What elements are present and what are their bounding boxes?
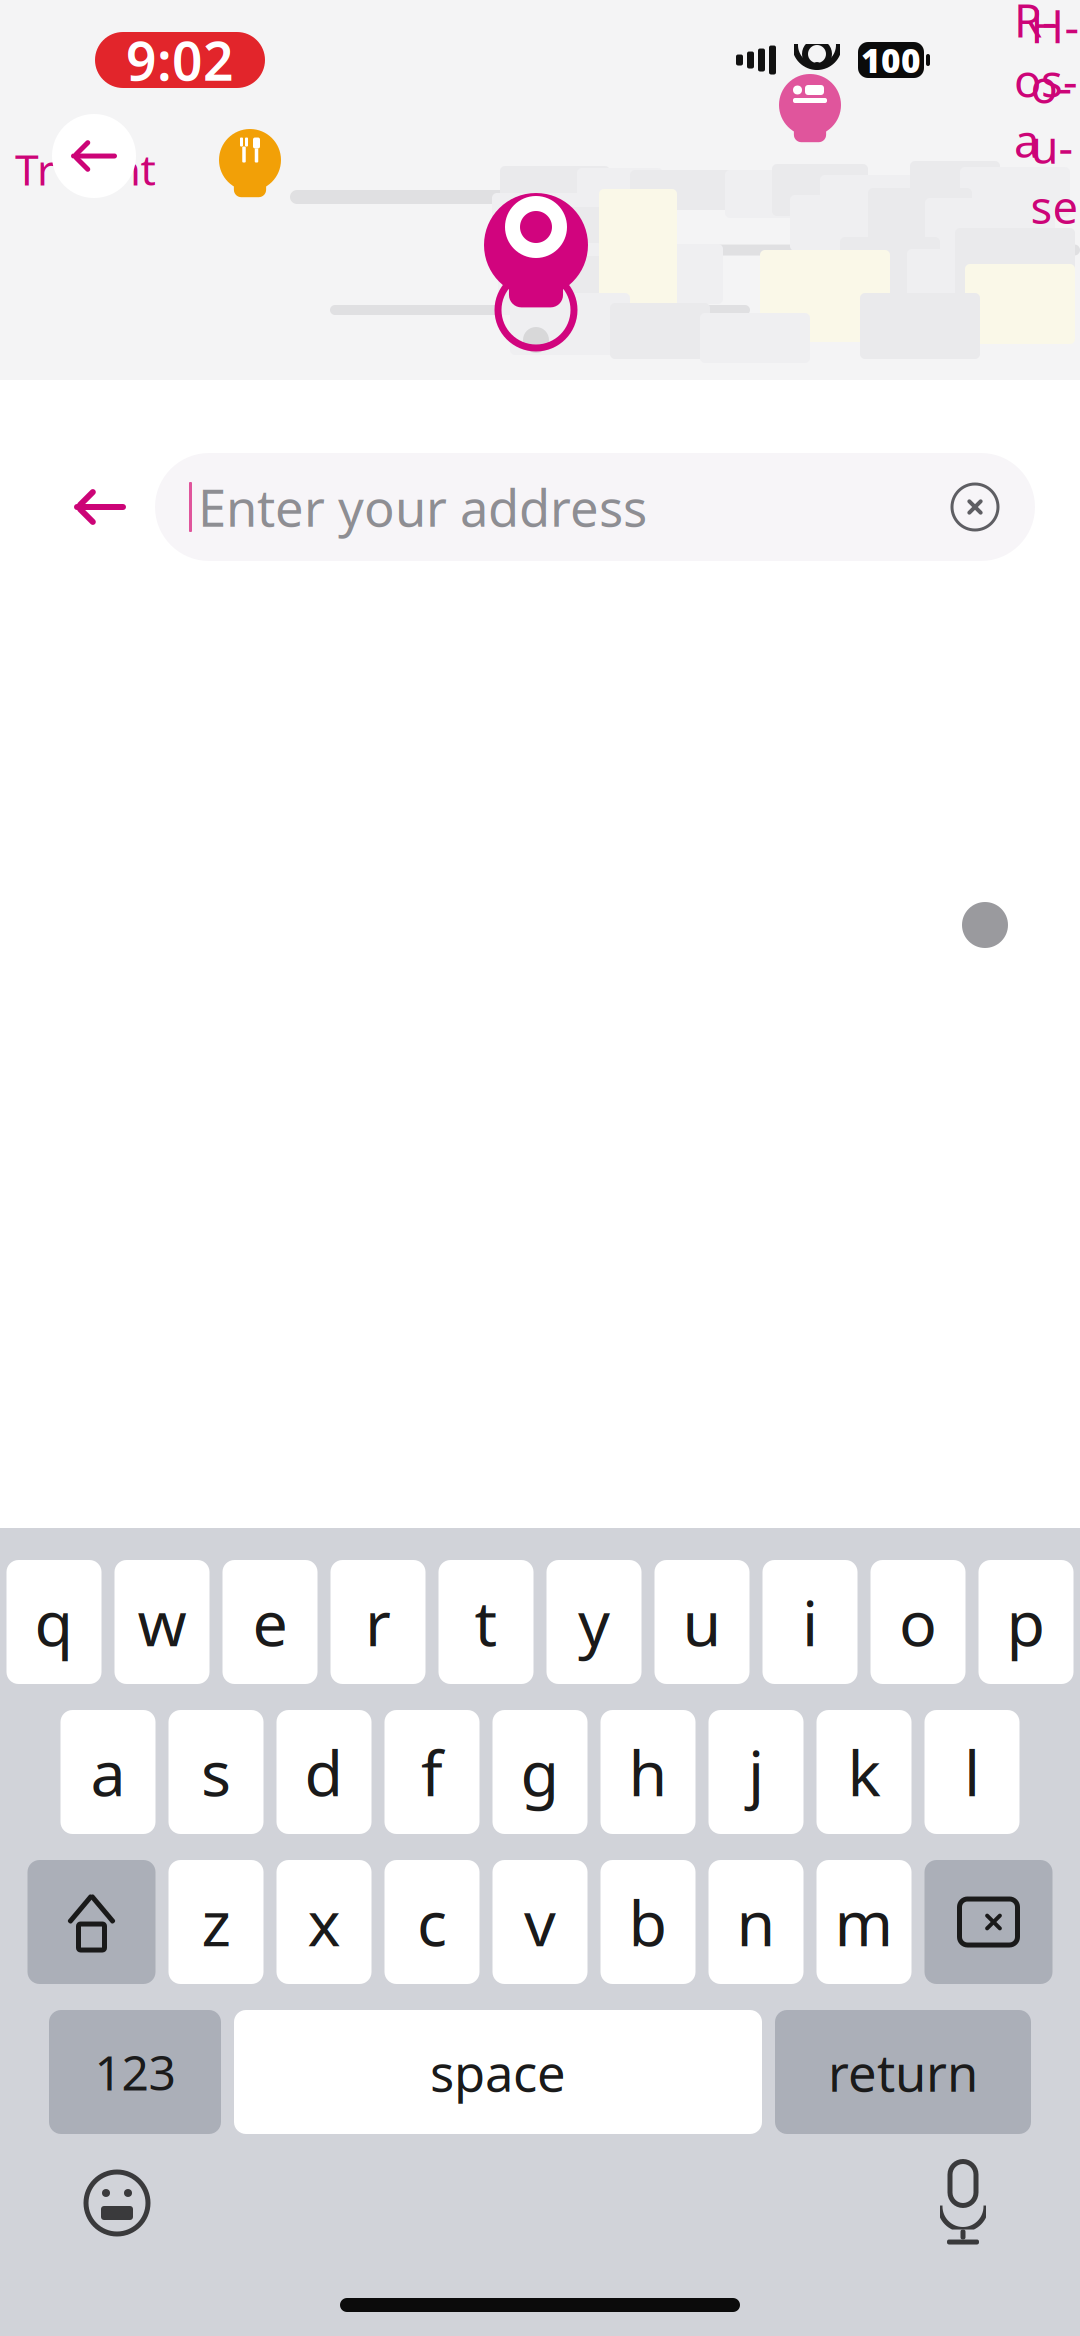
button[interactable]: d xyxy=(276,1710,371,1834)
staticText: Enter your address xyxy=(198,473,647,541)
staticText: c xyxy=(417,1880,447,1964)
staticText: e xyxy=(252,1580,287,1664)
staticText: Rosa xyxy=(1014,0,1078,170)
staticText: d xyxy=(304,1730,343,1814)
button[interactable]: Dictate xyxy=(908,2148,1018,2258)
button[interactable]: Enter your address xyxy=(155,453,1035,561)
button[interactable]: space xyxy=(234,2010,762,2134)
staticText: i xyxy=(802,1580,818,1664)
staticText: p xyxy=(1006,1580,1045,1664)
button[interactable]: x xyxy=(276,1860,371,1984)
button[interactable]: w xyxy=(114,1560,209,1684)
staticText: k xyxy=(847,1730,880,1814)
staticText: h xyxy=(628,1730,667,1814)
staticText: a xyxy=(90,1730,125,1814)
staticText: z xyxy=(201,1880,230,1964)
button[interactable]: c xyxy=(384,1860,479,1984)
staticText: Tr xyxy=(15,141,55,197)
staticText: u xyxy=(682,1580,721,1664)
staticText: 9:02 xyxy=(126,25,234,95)
button[interactable]: k xyxy=(816,1710,911,1834)
button[interactable]: g xyxy=(492,1710,587,1834)
button[interactable]: e xyxy=(222,1560,317,1684)
button[interactable]: l xyxy=(924,1710,1019,1834)
button[interactable]: r xyxy=(330,1560,425,1684)
button[interactable]: Back xyxy=(45,452,155,562)
staticText: House xyxy=(1030,0,1079,236)
button[interactable]: s xyxy=(168,1710,263,1834)
staticText: r xyxy=(365,1580,391,1664)
staticText: f xyxy=(421,1730,443,1814)
button[interactable]: u xyxy=(654,1560,749,1684)
button[interactable]: i xyxy=(762,1560,857,1684)
staticText: n xyxy=(736,1880,775,1964)
staticText: b xyxy=(628,1880,667,1964)
button[interactable]: a xyxy=(60,1710,155,1834)
button[interactable]: p xyxy=(978,1560,1073,1684)
button[interactable]: b xyxy=(600,1860,695,1984)
staticText: 123 xyxy=(94,2040,175,2104)
staticText: o xyxy=(899,1580,937,1664)
staticText: j xyxy=(748,1730,764,1814)
staticText: y xyxy=(578,1580,610,1664)
button[interactable]: 123 xyxy=(49,2010,221,2134)
staticText: space xyxy=(430,2038,566,2106)
staticText: t xyxy=(474,1580,497,1664)
staticText: 100 xyxy=(861,38,921,82)
staticText: q xyxy=(34,1580,73,1664)
button[interactable]: Emoji xyxy=(62,2148,172,2258)
staticText: return xyxy=(828,2038,978,2106)
staticText: m xyxy=(834,1880,893,1964)
staticText: nt xyxy=(114,141,155,197)
button[interactable]: v xyxy=(492,1860,587,1984)
button[interactable]: h xyxy=(600,1710,695,1834)
button[interactable]: f xyxy=(384,1710,479,1834)
button[interactable]: t xyxy=(438,1560,533,1684)
button[interactable]: n xyxy=(708,1860,803,1984)
button[interactable]: m xyxy=(816,1860,911,1984)
button[interactable]: z xyxy=(168,1860,263,1984)
staticText: w xyxy=(137,1580,186,1664)
button[interactable]: Back xyxy=(52,114,136,198)
staticText: g xyxy=(520,1730,559,1814)
button[interactable]: Shift xyxy=(27,1860,155,1984)
button[interactable]: j xyxy=(708,1710,803,1834)
button[interactable]: Delete xyxy=(924,1860,1052,1984)
staticText: l xyxy=(964,1730,980,1814)
staticText: v xyxy=(524,1880,556,1964)
button[interactable]: q xyxy=(6,1560,101,1684)
button[interactable]: y xyxy=(546,1560,641,1684)
button[interactable]: o xyxy=(870,1560,965,1684)
staticText: x xyxy=(307,1880,340,1964)
staticText: s xyxy=(201,1730,231,1814)
button[interactable]: return xyxy=(775,2010,1031,2134)
